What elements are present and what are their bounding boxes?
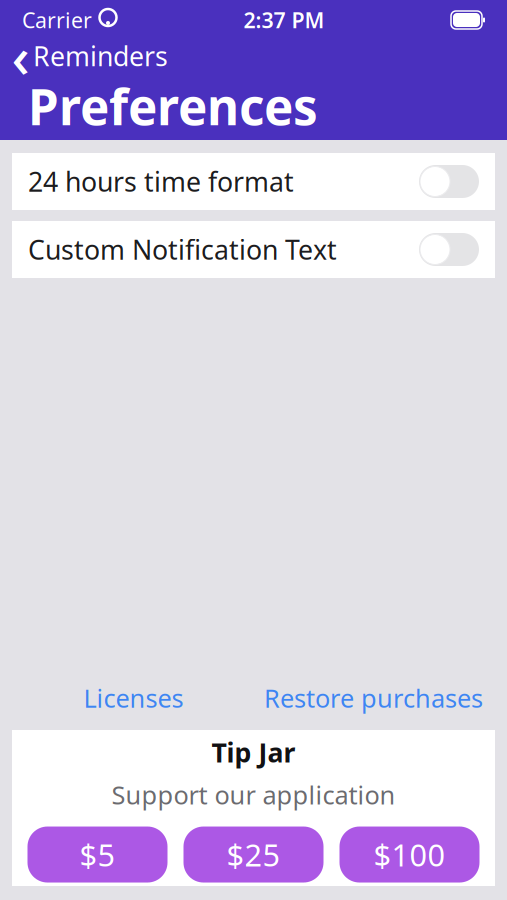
staticText: $25: [226, 834, 280, 875]
staticText: Support our application: [111, 778, 395, 811]
button[interactable]: Restore purchases: [253, 678, 493, 718]
staticText: $100: [373, 834, 445, 875]
staticText: Reminders: [33, 38, 168, 74]
staticText: Custom Notification Text: [28, 232, 337, 267]
button[interactable]: $5: [27, 826, 167, 882]
staticText: Restore purchases: [264, 681, 483, 715]
button[interactable]: Licenses: [13, 678, 253, 718]
staticText: 2:37 PM: [243, 6, 324, 34]
staticText: Tip Jar: [211, 734, 295, 770]
staticText: Preferences: [28, 73, 318, 139]
staticText: ‹: [11, 19, 29, 93]
staticText: Carrier: [22, 6, 92, 34]
staticText: $5: [79, 834, 115, 875]
button[interactable]: $25: [183, 826, 323, 882]
button[interactable]: $100: [339, 826, 479, 882]
staticText: 24 hours time format: [28, 164, 294, 199]
button[interactable]: Custom Notification Text: [12, 221, 495, 278]
button[interactable]: 24 hours time format: [12, 153, 495, 210]
staticText: Licenses: [83, 681, 183, 715]
button[interactable]: ‹: [0, 36, 182, 76]
